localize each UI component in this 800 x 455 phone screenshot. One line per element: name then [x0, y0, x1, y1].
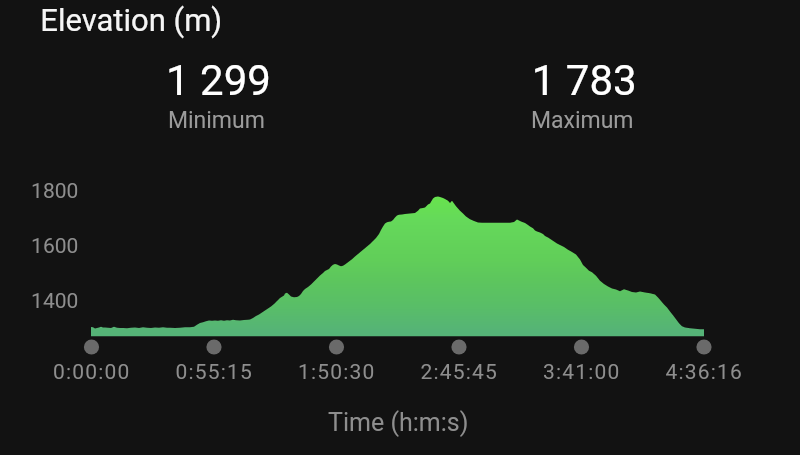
button[interactable]	[0, 0, 800, 455]
